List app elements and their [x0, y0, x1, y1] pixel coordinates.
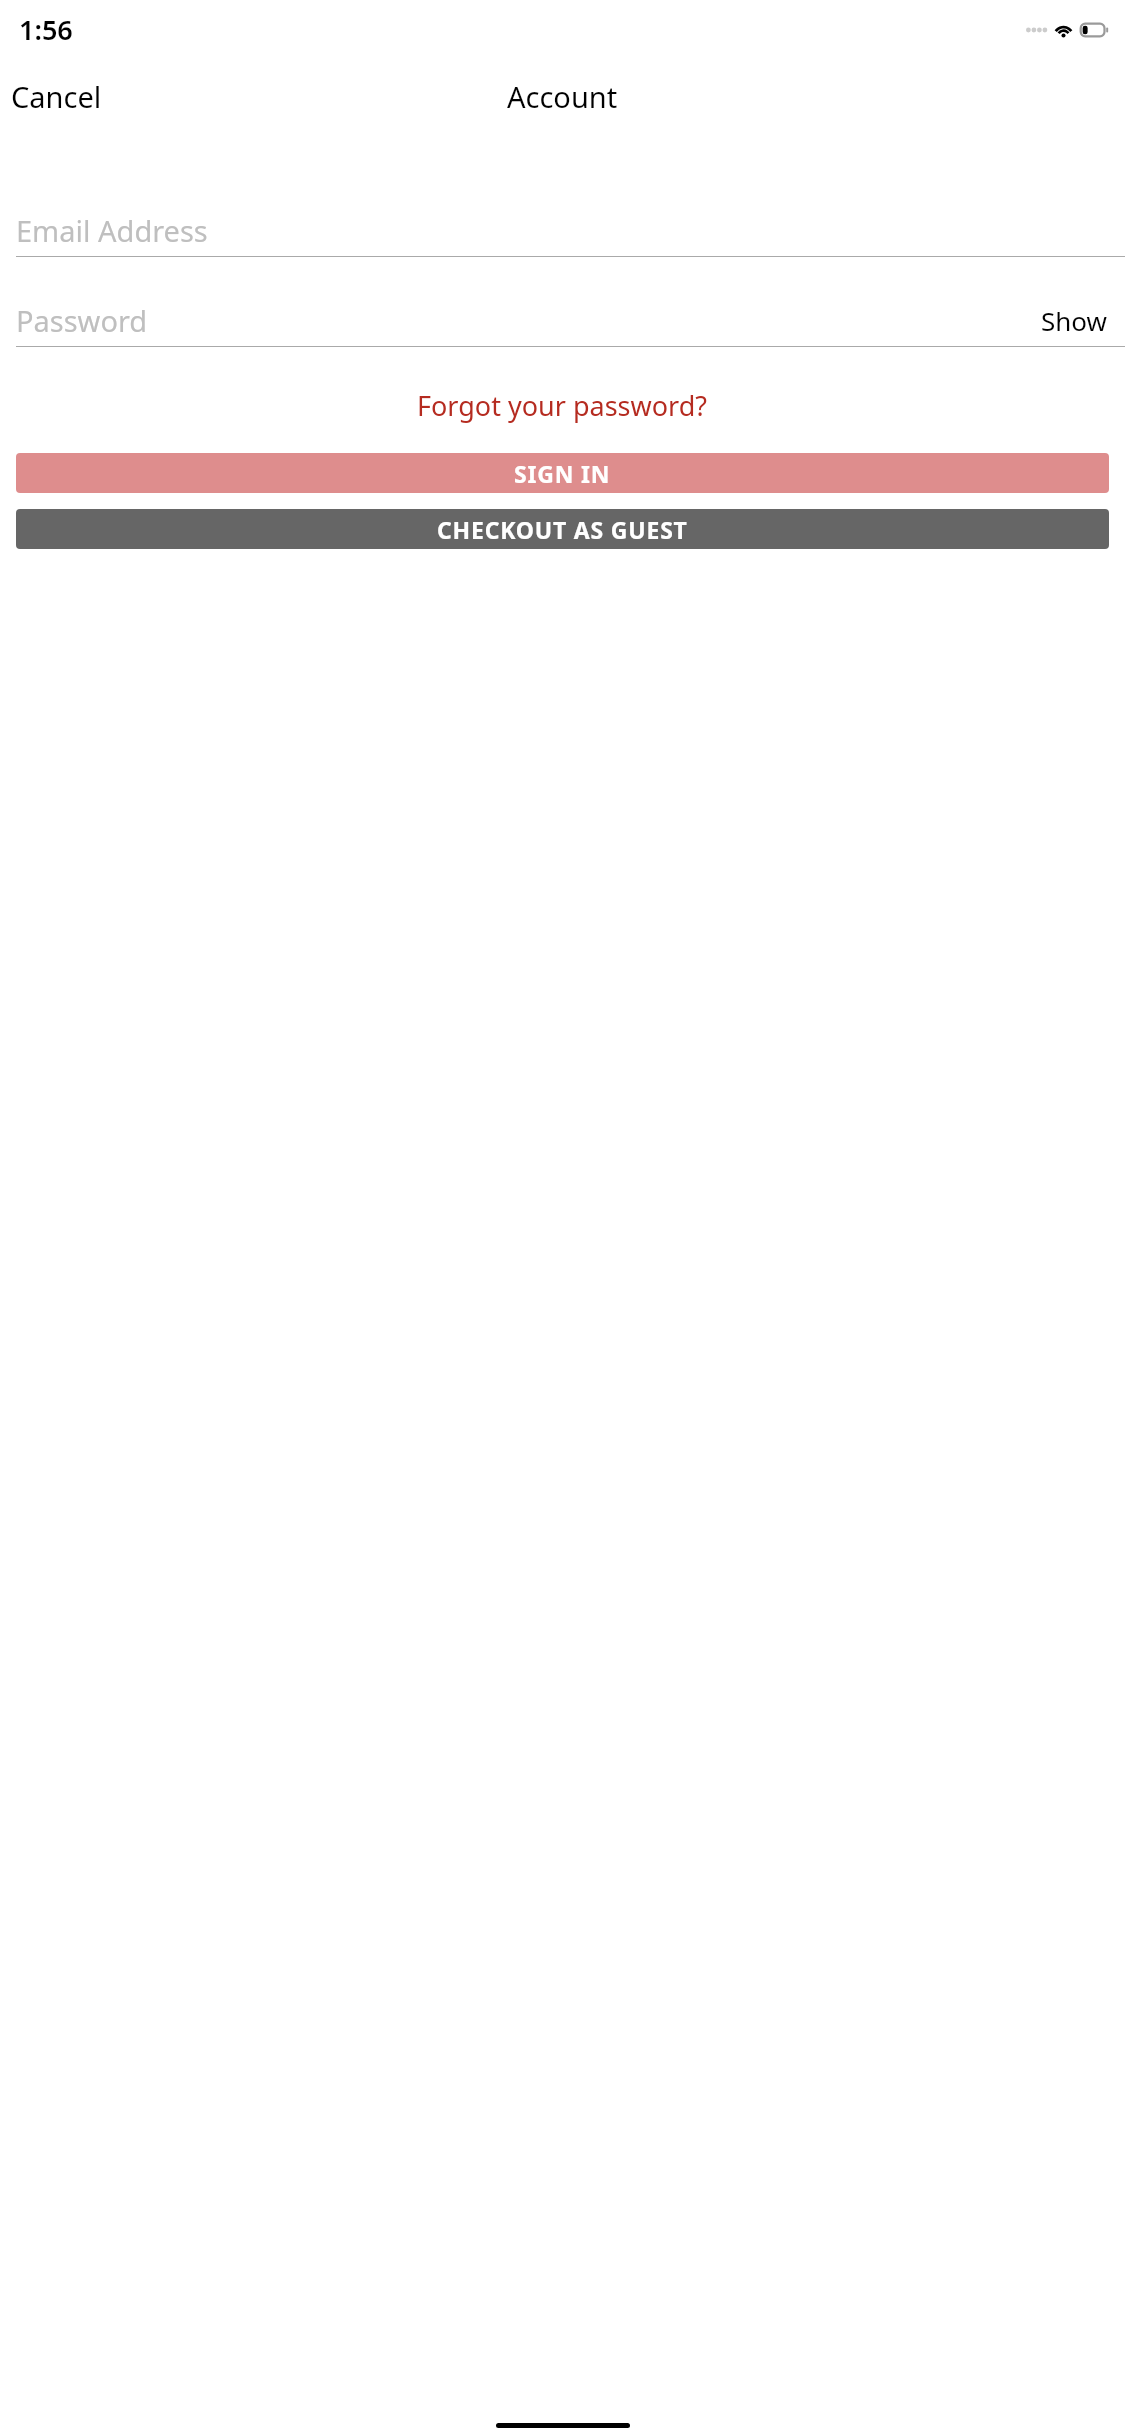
button[interactable]: Email Address — [0, 204, 1125, 256]
button[interactable]: Cancel — [0, 71, 113, 122]
staticText: 1:56 — [19, 11, 73, 48]
staticText: Forgot your password? — [417, 387, 708, 424]
staticText: SIGN IN — [514, 458, 611, 489]
button[interactable]: SIGN IN — [16, 453, 1109, 493]
button[interactable]: Show — [1039, 299, 1109, 342]
staticText: Email Address — [16, 211, 1109, 250]
button[interactable]: CHECKOUT AS GUEST — [16, 509, 1109, 549]
button[interactable]: Password — [0, 294, 1125, 346]
staticText: Show — [1041, 303, 1107, 338]
staticText: CHECKOUT AS GUEST — [437, 514, 688, 545]
staticText: Account — [507, 77, 618, 116]
staticText: Cancel — [11, 77, 102, 116]
button[interactable]: Forgot your password? — [0, 377, 1125, 434]
staticText: Password — [16, 301, 1039, 340]
